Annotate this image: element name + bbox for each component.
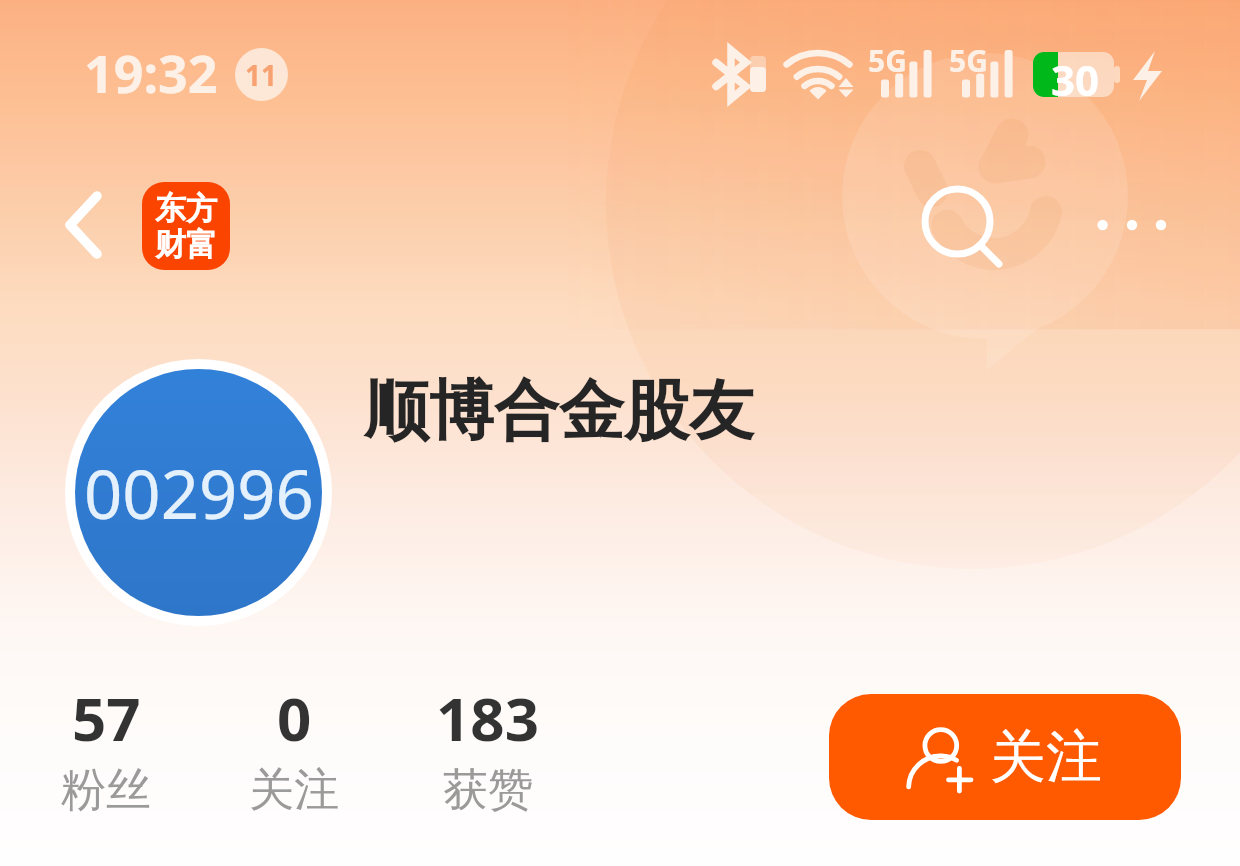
staticText: 粉丝 bbox=[61, 762, 151, 819]
staticText: 5G bbox=[949, 40, 988, 81]
button[interactable]: 关注 bbox=[829, 694, 1181, 820]
staticText: 19:32 bbox=[84, 37, 218, 108]
button[interactable]: More options bbox=[1085, 186, 1169, 264]
staticText: 东方 财富 bbox=[155, 189, 217, 264]
staticText: 11 bbox=[245, 56, 278, 94]
staticText: 002996 bbox=[84, 447, 314, 538]
staticText: 30 bbox=[1051, 51, 1100, 108]
staticText: 0 bbox=[277, 677, 312, 759]
button[interactable]: 57 bbox=[16, 677, 196, 819]
button[interactable]: 183 bbox=[397, 677, 577, 819]
staticText: 5G bbox=[868, 40, 907, 81]
button[interactable]: 东方 财富 bbox=[142, 182, 230, 270]
button[interactable]: Back bbox=[46, 182, 134, 270]
staticText: 顺博合金股友 bbox=[364, 370, 754, 452]
staticText: 183 bbox=[436, 677, 539, 759]
staticText: 获赞 bbox=[443, 762, 533, 819]
staticText: 关注 bbox=[249, 762, 339, 819]
button[interactable]: Search bbox=[910, 174, 1010, 274]
staticText: 57 bbox=[72, 677, 141, 759]
staticText: 关注 bbox=[990, 722, 1102, 793]
button[interactable]: 0 bbox=[204, 677, 384, 819]
